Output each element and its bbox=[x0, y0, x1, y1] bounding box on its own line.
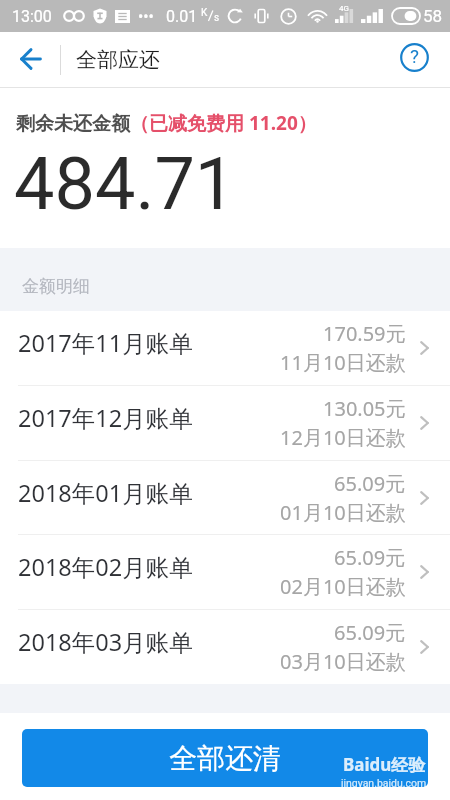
staticText: 03月10日还款 bbox=[280, 648, 406, 675]
staticText: 170.59元 bbox=[323, 320, 406, 347]
staticText: 01月10日还款 bbox=[280, 499, 406, 526]
button[interactable]: Help bbox=[398, 36, 442, 80]
staticText: 484.71 bbox=[14, 142, 236, 226]
button[interactable]: 2017年12月账单 bbox=[0, 386, 450, 460]
button[interactable]: 全部还清 bbox=[22, 729, 428, 787]
staticText: ••• bbox=[138, 7, 154, 26]
staticText: K bbox=[201, 7, 208, 19]
staticText: 4G bbox=[339, 4, 349, 13]
staticText: 金额明细 bbox=[22, 276, 90, 297]
staticText: 全部应还 bbox=[76, 47, 160, 73]
staticText: 0.01 bbox=[166, 7, 198, 26]
staticText: 2018年02月账单 bbox=[18, 551, 193, 583]
staticText: jingyan.baidu.com bbox=[341, 777, 427, 789]
staticText: 2018年01月账单 bbox=[18, 477, 193, 509]
staticText: 65.09元 bbox=[334, 470, 406, 497]
staticText: 12月10日还款 bbox=[280, 424, 406, 451]
staticText: 65.09元 bbox=[334, 619, 406, 646]
staticText: 2017年12月账单 bbox=[18, 402, 193, 434]
staticText: 58 bbox=[423, 6, 443, 26]
staticText: 02月10日还款 bbox=[280, 573, 406, 600]
staticText: Baidu经验 bbox=[343, 753, 426, 776]
staticText: 2017年11月账单 bbox=[18, 327, 193, 359]
staticText: s bbox=[214, 12, 220, 24]
button[interactable]: Back bbox=[0, 32, 60, 87]
staticText: 13:00 bbox=[12, 7, 52, 26]
button[interactable]: 2018年02月账单 bbox=[0, 535, 450, 609]
staticText: 全部还清 bbox=[169, 741, 281, 776]
staticText: 11月10日还款 bbox=[280, 349, 406, 376]
staticText: 2018年03月账单 bbox=[18, 626, 193, 658]
staticText: 130.05元 bbox=[323, 395, 406, 422]
button[interactable]: 2018年01月账单 bbox=[0, 461, 450, 534]
button[interactable]: 2017年11月账单 bbox=[0, 311, 450, 385]
staticText: 65.09元 bbox=[334, 544, 406, 571]
staticText: ? bbox=[410, 45, 419, 67]
staticText: 剩余未还金额（已减免费用 11.20） bbox=[16, 110, 317, 136]
button[interactable]: 2018年03月账单 bbox=[0, 610, 450, 684]
